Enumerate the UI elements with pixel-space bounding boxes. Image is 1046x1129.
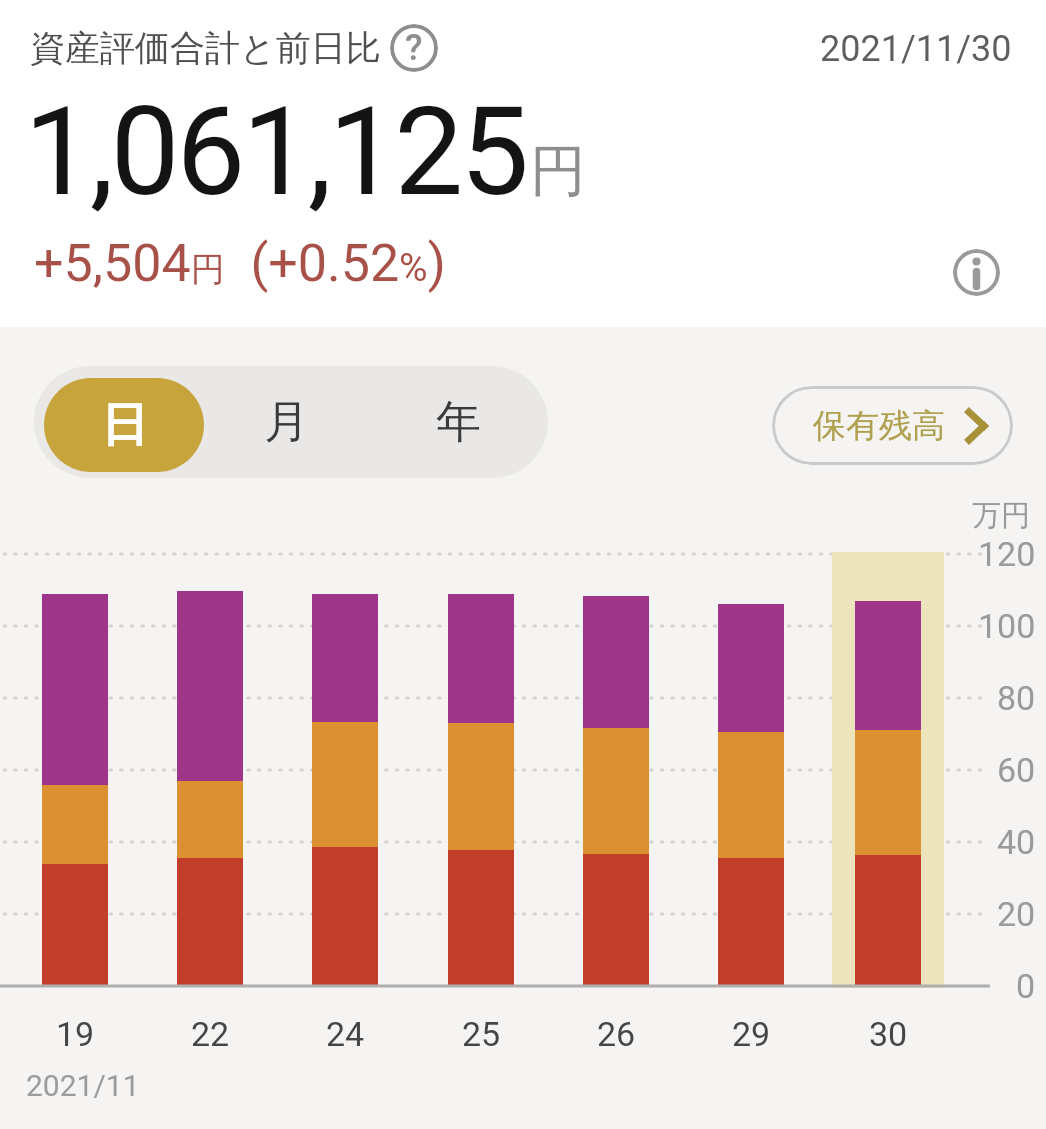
staticText: 2021/11 (26, 1068, 140, 1103)
staticText: 1,061,125 (24, 80, 526, 224)
staticText: 40 (997, 822, 1036, 862)
staticText: 20 (997, 894, 1036, 934)
staticText: 月 (264, 394, 309, 451)
staticText: 100 (978, 606, 1036, 646)
staticText: 22 (191, 1014, 230, 1054)
button[interactable]: 月 (211, 366, 361, 478)
staticText: 0 (1016, 966, 1036, 1006)
staticText: 保有残高 (813, 405, 945, 447)
staticText: 80 (997, 678, 1036, 718)
staticText: 円 (530, 136, 586, 207)
staticText: 30 (869, 1014, 908, 1054)
staticText: 29 (732, 1014, 771, 1054)
staticText: 2021/11/30 (820, 28, 1012, 70)
staticText: 年 (436, 394, 481, 451)
staticText: 26 (597, 1014, 636, 1054)
staticText: 日 (101, 396, 148, 455)
button[interactable] (953, 249, 1000, 296)
staticText: 万円 (972, 497, 1030, 534)
button[interactable]: ? (390, 24, 438, 72)
button[interactable]: 年 (383, 366, 533, 478)
staticText: 60 (997, 750, 1036, 790)
button[interactable]: 日 (44, 378, 204, 472)
staticText: +5,504円 (+0.52%) (34, 233, 446, 294)
staticText: 25 (462, 1014, 501, 1054)
staticText: 120 (978, 534, 1036, 574)
staticText: 資産評価合計と前日比 (30, 26, 381, 70)
staticText: 24 (326, 1014, 365, 1054)
button[interactable]: 保有残高 (772, 386, 1013, 465)
staticText: ? (405, 27, 423, 69)
staticText: 19 (56, 1014, 95, 1054)
